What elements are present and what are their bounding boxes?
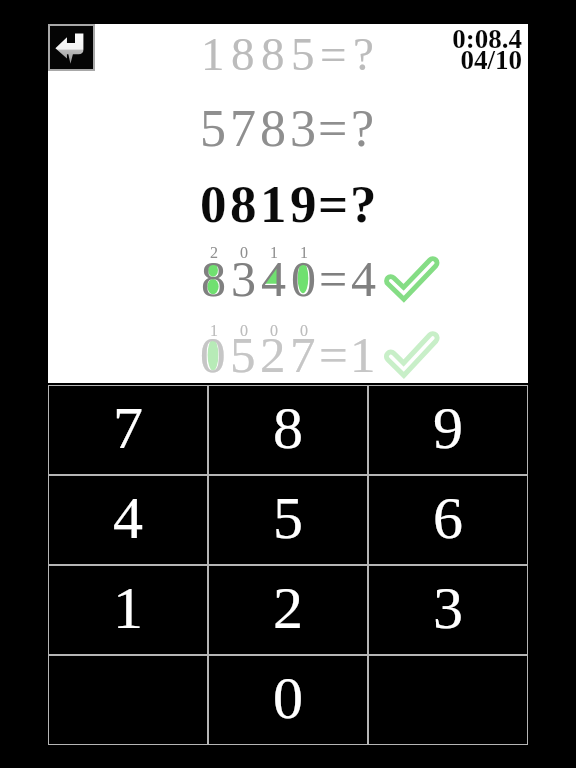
staticText: 5 [230, 327, 256, 383]
staticText: 0 [291, 251, 316, 306]
staticText: 1 [300, 244, 308, 262]
staticText: 0 [270, 322, 278, 340]
staticText: 8 [230, 175, 257, 234]
button[interactable] [368, 655, 528, 745]
staticText: 2 [210, 244, 218, 262]
button[interactable]: 6 [368, 475, 528, 565]
staticText: 0:08.4 04/10 [452, 24, 522, 75]
staticText: 1 [210, 322, 218, 340]
staticText: 7 [290, 327, 316, 383]
staticText: ? [350, 175, 377, 234]
button[interactable]: 9 [368, 385, 528, 475]
staticText: 5 [200, 100, 226, 158]
staticText: 0 [300, 322, 308, 340]
staticText: 8 [231, 28, 255, 80]
button[interactable]: 1 [48, 565, 208, 655]
button[interactable]: 8 [208, 385, 368, 475]
staticText: = [318, 175, 348, 234]
button[interactable]: 0 [208, 655, 368, 745]
staticText: 8 [261, 28, 285, 80]
staticText: 1 [270, 244, 278, 262]
staticText: = [319, 251, 348, 306]
staticText: ? [351, 100, 375, 158]
staticText: 0 [200, 175, 227, 234]
staticText: = [318, 100, 348, 158]
staticText: 2 [273, 575, 303, 641]
staticText: 2 [260, 327, 286, 383]
staticText: 4 [113, 485, 143, 551]
staticText: 3 [433, 575, 463, 641]
staticText: = [320, 28, 347, 80]
staticText: 3 [290, 100, 316, 158]
staticText: 7 [113, 395, 143, 461]
button[interactable] [48, 24, 95, 71]
staticText: 9 [433, 395, 463, 461]
staticText: ? [353, 28, 374, 80]
button[interactable] [48, 655, 208, 745]
button[interactable]: 2 [208, 565, 368, 655]
button[interactable]: 7 [48, 385, 208, 475]
staticText: 4 [261, 251, 286, 306]
staticText: 8 [201, 251, 226, 306]
staticText: 3 [231, 251, 256, 306]
staticText: = [319, 327, 348, 383]
staticText: 1 [260, 175, 287, 234]
staticText: 5 [291, 28, 315, 80]
staticText: 4 [351, 251, 376, 306]
staticText: 5 [273, 485, 303, 551]
staticText: 0 [273, 665, 303, 731]
staticText: 6 [433, 485, 463, 551]
staticText: 7 [230, 100, 256, 158]
staticText: 1 [113, 575, 143, 641]
staticText: 0 [240, 322, 248, 340]
button[interactable]: 4 [48, 475, 208, 565]
staticText: 8 [260, 100, 286, 158]
button[interactable]: 5 [208, 475, 368, 565]
staticText: 8 [273, 395, 303, 461]
staticText: 0 [200, 327, 226, 383]
staticText: 9 [290, 175, 317, 234]
staticText: 1 [350, 327, 376, 383]
button[interactable]: 3 [368, 565, 528, 655]
staticText: 0 [240, 244, 248, 262]
staticText: 1 [201, 28, 225, 80]
